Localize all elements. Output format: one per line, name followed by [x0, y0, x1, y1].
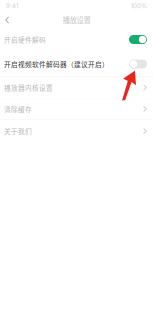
button[interactable]: 清除缓存 — [0, 98, 153, 119]
staticText: 播放设置 — [62, 15, 90, 25]
button[interactable]: 开启视频软件解码器（建议开启） — [0, 51, 153, 76]
staticText: 播放器内核设置 — [4, 83, 53, 92]
staticText: 100% — [131, 2, 147, 10]
staticText: 9:41 — [6, 2, 18, 10]
button[interactable]: Back — [0, 12, 13, 28]
button[interactable]: 关于我们 — [0, 120, 153, 142]
button[interactable]: 播放器内核设置 — [0, 77, 153, 98]
staticText: 开启视频软件解码器（建议开启） — [4, 59, 109, 69]
staticText: 开启硬件解码 — [4, 35, 46, 44]
button[interactable]: 开启硬件解码 — [0, 28, 153, 51]
staticText: 关于我们 — [4, 126, 32, 136]
staticText: 清除缓存 — [4, 104, 32, 114]
